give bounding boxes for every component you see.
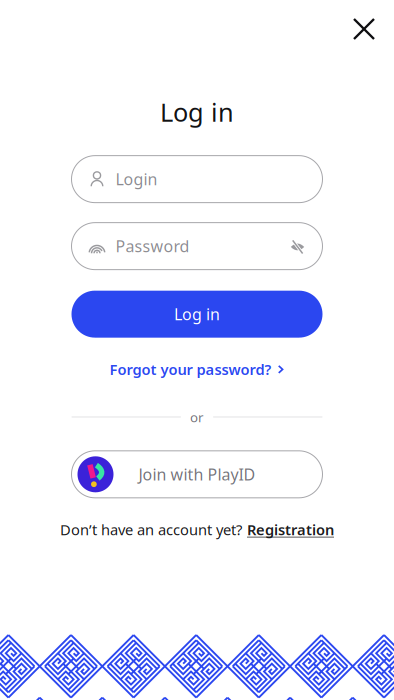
button[interactable]: Registration bbox=[247, 520, 334, 539]
staticText: Log in bbox=[160, 95, 234, 129]
staticText: Join with PlayID bbox=[138, 464, 255, 485]
button[interactable]: Close bbox=[342, 7, 386, 51]
button[interactable]: Join with PlayID bbox=[71, 451, 322, 498]
button[interactable]: Forgot your password? bbox=[109, 353, 284, 386]
staticText: Forgot your password? bbox=[109, 360, 271, 379]
staticText: Password bbox=[115, 235, 189, 257]
staticText: Log in bbox=[174, 303, 220, 325]
staticText: Login bbox=[115, 168, 157, 190]
staticText: or bbox=[190, 408, 204, 426]
staticText: Registration bbox=[247, 520, 334, 539]
staticText: Don’t have an account yet? bbox=[60, 520, 242, 539]
button[interactable]: Log in bbox=[71, 291, 322, 338]
